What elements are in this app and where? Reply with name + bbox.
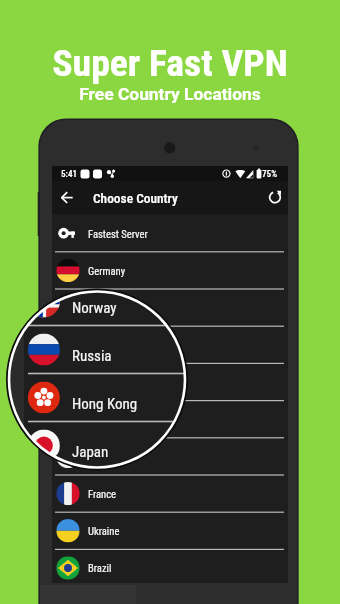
staticText: Russia (88, 339, 116, 351)
button[interactable]: Refresh (263, 184, 289, 211)
staticText: Norway (88, 302, 120, 314)
staticText: Free Country Locations (0, 84, 340, 104)
button[interactable] (52, 289, 288, 326)
button[interactable] (52, 512, 288, 549)
staticText: 5:41 (61, 168, 78, 179)
staticText: Super Fast VPN (0, 41, 340, 85)
staticText: Norway (72, 299, 117, 317)
button[interactable] (52, 215, 288, 252)
staticText: Japan (72, 443, 109, 461)
staticText: Choose Country (93, 191, 178, 207)
button[interactable] (52, 326, 288, 363)
staticText: Hong Kong (72, 395, 138, 413)
staticText: Singapore (88, 451, 130, 463)
staticText: Ukraine (88, 525, 120, 537)
staticText: France (88, 488, 117, 500)
button[interactable] (52, 549, 288, 586)
staticText: Fastest Server (88, 228, 148, 240)
button[interactable]: Back (55, 184, 81, 211)
staticText: Germany (88, 265, 126, 277)
staticText: Russia (72, 347, 112, 365)
staticText: 75% (262, 168, 278, 179)
staticText: Japan (88, 414, 114, 426)
button[interactable] (52, 252, 288, 289)
button[interactable] (52, 475, 288, 512)
staticText: Brazil (88, 562, 112, 574)
button[interactable] (52, 401, 288, 438)
button[interactable] (52, 363, 288, 400)
button[interactable] (52, 438, 288, 475)
